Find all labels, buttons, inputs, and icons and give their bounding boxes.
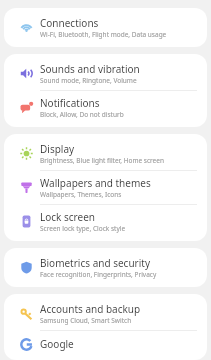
staticText: Lock screen bbox=[40, 210, 96, 224]
button[interactable]: Connections bbox=[4, 11, 207, 44]
button[interactable]: Notifications bbox=[4, 91, 207, 124]
staticText: Sound mode, Ringtone, Volume bbox=[40, 76, 137, 85]
button[interactable]: Sounds and vibration bbox=[4, 57, 207, 90]
staticText: Samsung Cloud, Smart Switch bbox=[40, 316, 132, 325]
staticText: Sounds and vibration bbox=[40, 62, 140, 76]
button[interactable]: Wallpapers and themes bbox=[4, 171, 207, 204]
staticText: Connections bbox=[40, 16, 99, 30]
staticText: Google bbox=[40, 337, 74, 351]
staticText: Wallpapers, Themes, Icons bbox=[40, 190, 122, 199]
staticText: Biometrics and security bbox=[40, 256, 150, 270]
staticText: Face recognition, Fingerprints, Privacy bbox=[40, 270, 157, 279]
staticText: Wallpapers and themes bbox=[40, 176, 151, 190]
button[interactable]: Biometrics and security bbox=[4, 251, 207, 284]
button[interactable]: Lock screen bbox=[4, 205, 207, 238]
staticText: Block, Allow, Do not disturb bbox=[40, 110, 124, 119]
staticText: Screen lock type, Clock style bbox=[40, 224, 126, 233]
button[interactable]: Display bbox=[4, 137, 207, 170]
staticText: Brightness, Blue light filter, Home scre… bbox=[40, 156, 164, 165]
button[interactable]: Google bbox=[4, 331, 207, 357]
staticText: Accounts and backup bbox=[40, 302, 141, 316]
staticText: Display bbox=[40, 142, 75, 156]
button[interactable]: Accounts and backup bbox=[4, 297, 207, 330]
staticText: Wi-Fi, Bluetooth, Flight mode, Data usag… bbox=[40, 30, 167, 39]
staticText: Notifications bbox=[40, 96, 100, 110]
